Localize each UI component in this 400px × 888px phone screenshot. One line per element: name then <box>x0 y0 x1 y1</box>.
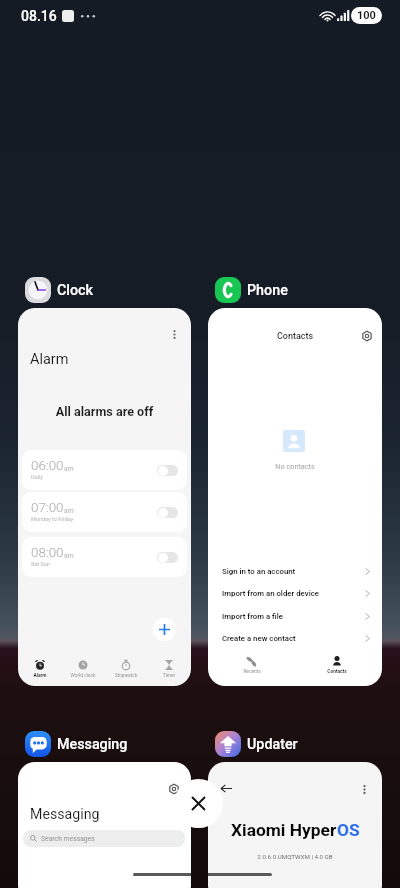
button[interactable]: Import from an older device <box>208 584 382 602</box>
staticText: OS <box>337 820 360 840</box>
staticText: Phone <box>247 282 288 299</box>
other: More options <box>173 330 176 339</box>
button[interactable]: Messaging <box>25 731 128 757</box>
staticText: Messaging <box>57 736 128 753</box>
button[interactable]: Search messages <box>23 830 185 847</box>
staticText: am <box>64 465 74 473</box>
button[interactable]: Sign in to an account <box>208 562 382 580</box>
staticText: Timer <box>148 673 190 679</box>
staticText: Sat Sun <box>31 561 50 567</box>
staticText: 06:00 <box>31 458 64 474</box>
button[interactable]: 07:00 <box>22 492 187 532</box>
staticText: Alarm <box>19 673 61 679</box>
staticText: Daily <box>31 474 43 480</box>
button[interactable]: Back <box>208 762 382 888</box>
button[interactable]: Import from a file <box>208 607 382 625</box>
staticText: Messaging <box>30 806 100 823</box>
button[interactable]: 08:00 <box>22 537 187 577</box>
button[interactable]: Stopwatch <box>105 660 147 679</box>
staticText: 08:00 <box>31 545 64 561</box>
staticText: Sign in to an account <box>222 567 365 576</box>
button[interactable]: More options <box>18 308 191 686</box>
staticText: Contacts <box>307 669 367 675</box>
button[interactable]: Back <box>220 782 233 795</box>
staticText: No contacts <box>208 462 382 471</box>
button[interactable]: Create a new contact <box>208 629 382 647</box>
staticText: 2.0.6.0.UMQTWXM | 4.0 GB <box>208 853 382 860</box>
button[interactable]: Settings <box>167 782 180 795</box>
button[interactable]: Toggle alarm <box>157 507 178 518</box>
button[interactable]: Updater <box>215 731 298 757</box>
button[interactable]: World clock <box>62 660 104 679</box>
staticText: Clock <box>57 282 94 299</box>
staticText: Import from an older device <box>222 589 365 598</box>
staticText: Xiaomi Hyper <box>231 820 337 840</box>
staticText: Contacts <box>208 331 382 342</box>
button[interactable]: Settings <box>18 762 191 888</box>
button[interactable]: Toggle alarm <box>157 465 178 476</box>
staticText: Stopwatch <box>105 673 147 679</box>
staticText: am <box>64 552 74 560</box>
button[interactable]: Add alarm <box>153 618 176 641</box>
staticText: Recents <box>222 669 282 675</box>
staticText: Updater <box>247 736 298 753</box>
staticText: World clock <box>62 673 104 679</box>
staticText: am <box>64 507 74 515</box>
staticText: Search messages <box>41 835 95 843</box>
staticText: Create a new contact <box>222 634 365 643</box>
button[interactable]: 06:00 <box>22 450 187 490</box>
button[interactable]: Contacts <box>208 308 382 686</box>
button[interactable]: Toggle alarm <box>157 552 178 563</box>
staticText: Import from a file <box>222 612 365 621</box>
staticText: All alarms are off <box>18 404 191 419</box>
button[interactable]: Timer <box>148 660 190 679</box>
button[interactable]: Contacts <box>307 656 367 675</box>
button[interactable]: Phone <box>215 277 288 303</box>
staticText: Monday to Friday <box>31 516 74 522</box>
button[interactable]: Settings <box>360 329 373 342</box>
button[interactable]: Alarm <box>19 660 61 679</box>
staticText: 07:00 <box>31 500 64 516</box>
button[interactable]: Clock <box>25 277 94 303</box>
button[interactable]: Close all <box>174 779 223 828</box>
other: More options <box>363 785 366 794</box>
staticText: 100 <box>357 9 376 22</box>
staticText: 08.16 <box>21 8 57 24</box>
staticText: Alarm <box>30 351 69 368</box>
button[interactable]: Recents <box>222 656 282 675</box>
